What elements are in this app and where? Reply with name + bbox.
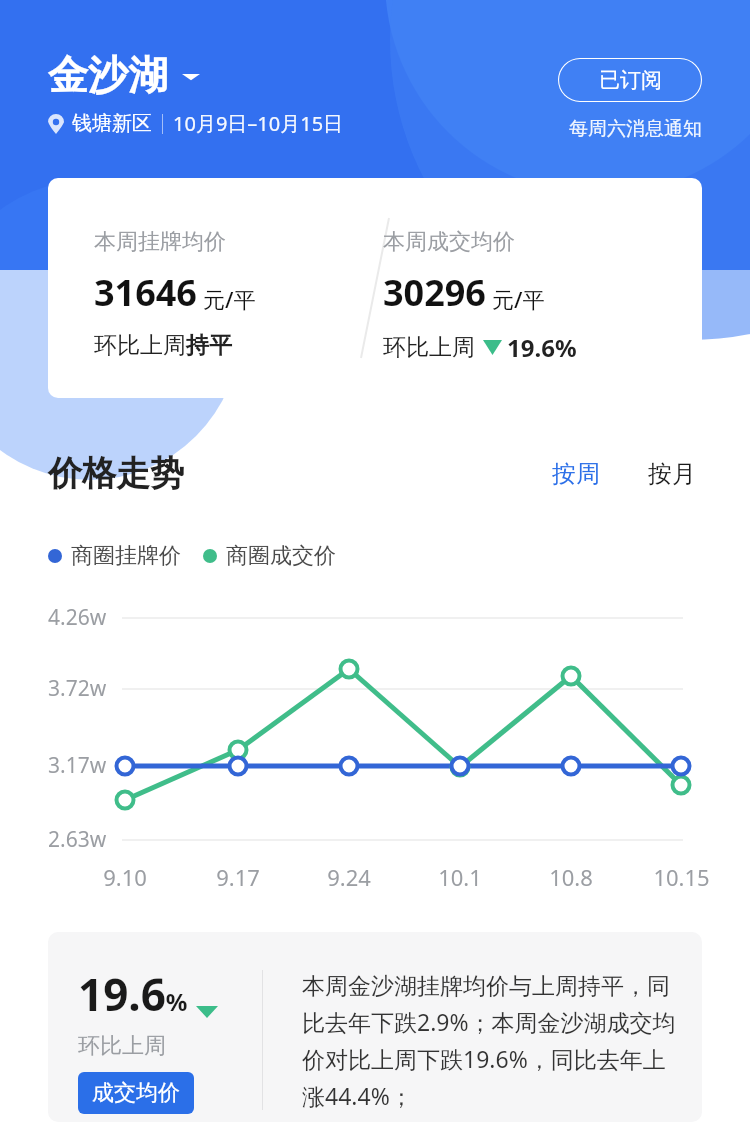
staticText: 环比上周: [78, 1032, 166, 1060]
staticText: 元/平: [203, 284, 256, 314]
staticText: 3.17w: [48, 751, 107, 780]
staticText: 30296: [383, 268, 486, 317]
button[interactable]: 19.6%: [48, 932, 702, 1122]
staticText: 本周金沙湖挂牌均价与上周持平，同比去年下跌2.9%；本周金沙湖成交均价对比上周下…: [302, 972, 680, 1112]
staticText: 商圈成交价: [226, 542, 336, 570]
staticText: 9.17: [216, 862, 260, 892]
staticText: 价格走势: [48, 452, 184, 495]
staticText: 9.24: [327, 862, 371, 892]
staticText: 商圈挂牌价: [71, 542, 181, 570]
button[interactable]: 按月: [642, 455, 702, 493]
staticText: 本周挂牌均价: [94, 228, 226, 256]
staticText: 9.10: [103, 862, 147, 892]
staticText: 3.72w: [48, 674, 107, 703]
staticText: 31646: [94, 268, 197, 317]
staticText: 每周六消息通知: [569, 117, 702, 141]
staticText: 2.63w: [48, 825, 107, 854]
button[interactable]: 成交均价: [78, 1072, 194, 1114]
staticText: 本周成交均价: [383, 228, 515, 256]
staticText: 成交均价: [92, 1079, 180, 1107]
staticText: 10.8: [549, 862, 593, 892]
staticText: 4.26w: [48, 603, 107, 632]
button[interactable]: 按周: [546, 455, 606, 493]
button[interactable]: 本周挂牌均价: [48, 178, 702, 398]
staticText: 已订阅: [599, 67, 662, 93]
staticText: 按月: [648, 459, 696, 489]
button[interactable]: 金沙湖: [48, 50, 200, 100]
staticText: 19.6%: [78, 964, 188, 1024]
button[interactable]: 已订阅: [558, 58, 702, 102]
staticText: 10.15: [653, 862, 710, 892]
staticText: 元/平: [492, 284, 545, 314]
staticText: 金沙湖: [48, 50, 168, 100]
staticText: 10.1: [438, 862, 482, 892]
staticText: 10月9日–10月15日: [173, 110, 344, 137]
staticText: 环比上周: [383, 333, 475, 362]
staticText: 按周: [552, 459, 600, 489]
staticText: 环比上周持平: [94, 331, 232, 360]
staticText: 钱塘新区: [72, 111, 152, 136]
staticText: 19.6%: [507, 331, 577, 364]
